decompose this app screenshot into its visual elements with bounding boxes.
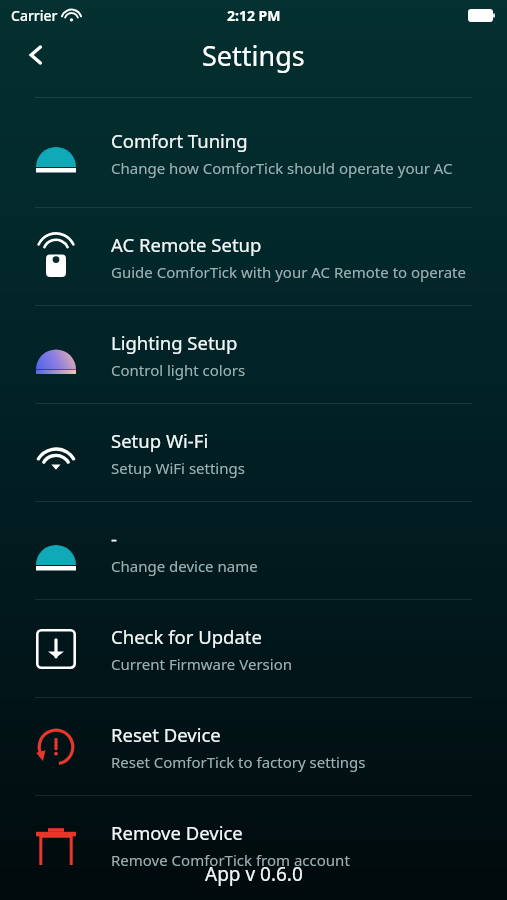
staticText: - <box>111 526 117 551</box>
staticText: Reset ComforTick to factory settings <box>111 752 366 772</box>
staticText: 2:12 PM <box>227 6 281 25</box>
staticText: Lighting Setup <box>111 330 238 355</box>
staticText: Reset Device <box>111 722 221 747</box>
button[interactable]: Check for Update <box>0 600 507 697</box>
staticText: Carrier <box>11 6 58 25</box>
staticText: Guide ComforTick with your AC Remote to … <box>111 262 466 282</box>
staticText: Comfort Tuning <box>111 128 248 153</box>
staticText: Change device name <box>111 556 258 576</box>
staticText: Check for Update <box>111 624 262 649</box>
button[interactable]: Setup Wi-Fi <box>0 404 507 501</box>
staticText: Remove Device <box>111 820 243 845</box>
button[interactable]: AC Remote Setup <box>0 208 507 305</box>
button[interactable]: Back <box>14 33 58 77</box>
button[interactable]: Remove Device <box>0 796 507 893</box>
staticText: Change how ComforTick should operate you… <box>111 158 453 178</box>
staticText: Current Firmware Version <box>111 654 292 674</box>
staticText: Control light colors <box>111 360 246 380</box>
staticText: App v 0.6.0 <box>205 861 303 887</box>
button[interactable]: Lighting Setup <box>0 306 507 403</box>
staticText: Setup Wi-Fi <box>111 428 209 453</box>
button[interactable]: Reset Device <box>0 698 507 795</box>
button[interactable]: Comfort Tuning <box>0 98 507 207</box>
staticText: Setup WiFi settings <box>111 458 245 478</box>
staticText: AC Remote Setup <box>111 232 262 257</box>
staticText: Remove ComforTick from account <box>111 850 350 870</box>
staticText: Settings <box>202 37 305 74</box>
button[interactable]: - <box>0 502 507 599</box>
